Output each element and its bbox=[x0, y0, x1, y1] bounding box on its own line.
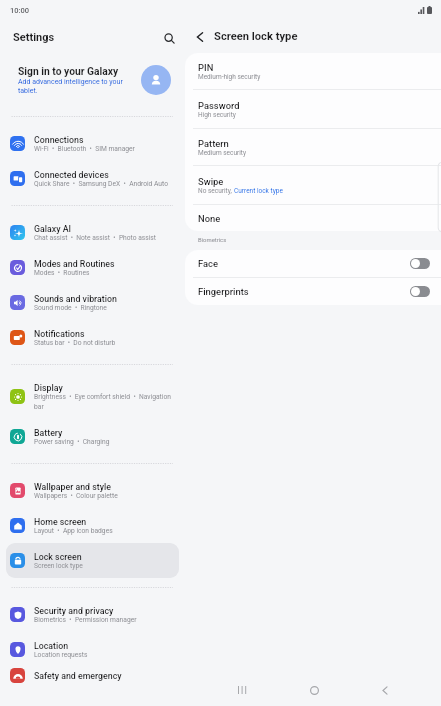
button[interactable] bbox=[410, 286, 430, 297]
staticText: Modes • Routines bbox=[34, 269, 90, 277]
staticText: Home screen bbox=[34, 517, 87, 527]
button[interactable]: PIN bbox=[185, 53, 441, 90]
staticText: Password bbox=[198, 100, 240, 111]
button[interactable]: Notifications bbox=[6, 320, 179, 355]
staticText: Pattern bbox=[198, 138, 229, 149]
button[interactable]: Navigate up bbox=[189, 26, 210, 47]
button[interactable]: Safety and emergency bbox=[6, 667, 179, 684]
button[interactable]: Pattern bbox=[185, 129, 441, 166]
button[interactable]: Home screen bbox=[6, 508, 179, 543]
staticText: Brightness • Eye comfort shield • Naviga… bbox=[34, 393, 176, 410]
button[interactable]: Display bbox=[6, 374, 179, 419]
button[interactable]: None bbox=[185, 205, 441, 231]
button[interactable]: Face bbox=[185, 250, 441, 278]
staticText: Add advanced intelligence to your tablet… bbox=[18, 78, 137, 95]
staticText: Sign in to your Galaxy bbox=[18, 65, 119, 77]
staticText: Fingerprints bbox=[198, 286, 410, 297]
button[interactable]: Security and privacy bbox=[6, 597, 179, 632]
button[interactable]: Home bbox=[299, 675, 329, 705]
button[interactable]: Fingerprints bbox=[185, 278, 441, 305]
staticText: Sounds and vibration bbox=[34, 294, 117, 304]
button[interactable]: Location bbox=[6, 632, 179, 667]
button[interactable]: Swipe bbox=[185, 166, 441, 205]
button[interactable]: Sounds and vibration bbox=[6, 285, 179, 320]
staticText: Screen lock type bbox=[214, 30, 298, 43]
staticText: Settings bbox=[13, 31, 55, 44]
staticText: Safety and emergency bbox=[34, 671, 122, 681]
staticText: Biometrics bbox=[198, 237, 227, 244]
staticText: Connections bbox=[34, 135, 84, 145]
staticText: Swipe bbox=[198, 176, 224, 187]
staticText: Sound mode • Ringtone bbox=[34, 304, 107, 312]
staticText: Modes and Routines bbox=[34, 259, 115, 269]
staticText: Battery bbox=[34, 428, 63, 438]
button[interactable]: Back bbox=[370, 675, 400, 705]
button[interactable]: Galaxy AI bbox=[6, 215, 179, 250]
staticText: Biometrics • Permission manager bbox=[34, 616, 137, 624]
staticText: Quick Share • Samsung DeX • Android Auto bbox=[34, 180, 168, 188]
staticText: Status bar • Do not disturb bbox=[34, 339, 116, 347]
staticText: Security and privacy bbox=[34, 606, 114, 616]
staticText: 10:00 bbox=[10, 6, 30, 15]
staticText: Location requests bbox=[34, 651, 88, 659]
staticText: Layout • App icon badges bbox=[34, 527, 113, 535]
staticText: Wallpapers • Colour palette bbox=[34, 492, 118, 500]
staticText: Screen lock type bbox=[34, 562, 83, 570]
staticText: Medium-high security bbox=[198, 73, 261, 81]
button[interactable]: Search bbox=[158, 27, 180, 49]
button[interactable] bbox=[410, 258, 430, 269]
staticText: Power saving • Charging bbox=[34, 438, 110, 446]
button[interactable]: Lock screen bbox=[6, 543, 179, 578]
staticText: Wallpaper and style bbox=[34, 482, 111, 492]
staticText: None bbox=[198, 213, 221, 224]
staticText: No security, bbox=[198, 187, 234, 195]
staticText: Chat assist • Note assist • Photo assist bbox=[34, 234, 157, 242]
staticText: Wi-Fi • Bluetooth • SIM manager bbox=[34, 145, 135, 153]
button[interactable]: Battery bbox=[6, 419, 179, 454]
staticText: Location bbox=[34, 641, 69, 651]
staticText: Display bbox=[34, 383, 63, 393]
staticText: Face bbox=[198, 258, 410, 269]
staticText: Medium security bbox=[198, 149, 247, 157]
button[interactable]: Password bbox=[185, 90, 441, 129]
button[interactable]: Sign in to your Galaxy bbox=[0, 53, 186, 107]
button[interactable]: Modes and Routines bbox=[6, 250, 179, 285]
staticText: PIN bbox=[198, 62, 214, 73]
staticText: Lock screen bbox=[34, 552, 82, 562]
staticText: Connected devices bbox=[34, 170, 109, 180]
button[interactable]: Wallpaper and style bbox=[6, 473, 179, 508]
staticText: Current lock type bbox=[234, 187, 283, 195]
staticText: Notifications bbox=[34, 329, 85, 339]
staticText: Galaxy AI bbox=[34, 224, 71, 234]
button[interactable]: Connected devices bbox=[6, 161, 179, 196]
button[interactable]: Recents bbox=[227, 675, 257, 705]
staticText: High security bbox=[198, 111, 236, 119]
button[interactable]: Connections bbox=[6, 126, 179, 161]
